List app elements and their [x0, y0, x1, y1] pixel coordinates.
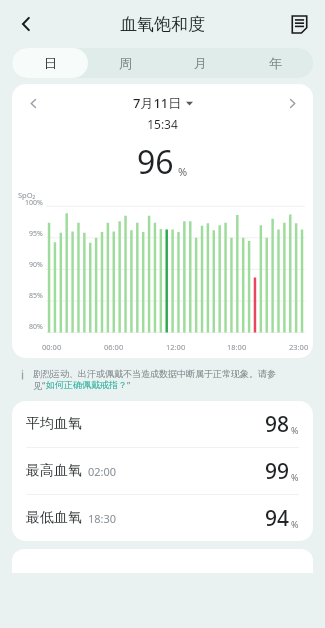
staticText: 90% — [29, 260, 43, 270]
staticText: % — [291, 471, 299, 483]
button[interactable]: 年 — [238, 48, 313, 78]
staticText: 平均血氧 — [26, 415, 82, 433]
staticText: % — [291, 518, 299, 530]
staticText: 月 — [194, 55, 207, 71]
staticText: 周 — [119, 55, 132, 71]
staticText: 02:00 — [88, 464, 117, 479]
staticText: % — [178, 164, 188, 179]
button[interactable]: Back — [8, 6, 44, 42]
staticText: 7月11日 — [133, 94, 182, 112]
staticText: 最低血氧 — [26, 509, 82, 527]
button[interactable]: 如何正确佩戴戒指？ — [46, 379, 127, 390]
button[interactable]: 周 — [88, 48, 163, 78]
staticText: 年 — [269, 55, 282, 71]
staticText: 95% — [29, 229, 43, 239]
staticText: SpO₂ — [18, 190, 36, 200]
button[interactable]: 平均血氧 — [12, 401, 313, 447]
staticText: 99 — [265, 457, 290, 486]
staticText: 85% — [29, 291, 43, 301]
staticText: 15:34 — [12, 116, 313, 132]
staticText: 剧烈运动、出汗或佩戴不当造成数据中断属于正常现象。请参 — [33, 368, 276, 379]
button[interactable]: 日 — [12, 48, 88, 78]
staticText: 见“ — [33, 379, 46, 391]
staticText: 18:30 — [88, 511, 117, 526]
staticText: 98 — [265, 410, 290, 439]
staticText: 血氧饱和度 — [120, 14, 205, 35]
staticText: 00:00 — [42, 342, 62, 352]
button[interactable]: 最低血氧 — [12, 495, 313, 541]
staticText: % — [291, 424, 299, 436]
button[interactable]: 月 — [163, 48, 238, 78]
button[interactable]: Previous day — [22, 92, 44, 114]
staticText: 94 — [265, 504, 290, 533]
staticText: 100% — [25, 198, 43, 208]
button[interactable]: 最高血氧 — [12, 448, 313, 494]
staticText: 80% — [29, 322, 43, 332]
staticText: 12:00 — [166, 342, 186, 352]
staticText: 18:00 — [227, 342, 247, 352]
staticText: 最高血氧 — [26, 462, 82, 480]
staticText: 06:00 — [104, 342, 124, 352]
staticText: 96 — [137, 140, 174, 184]
staticText: 23:00 — [289, 342, 309, 352]
staticText: 日 — [44, 55, 57, 71]
button[interactable]: 7月11日 — [44, 94, 281, 112]
button[interactable]: Next day — [281, 92, 303, 114]
staticText: ” — [127, 379, 131, 391]
button[interactable]: Records — [281, 6, 317, 42]
